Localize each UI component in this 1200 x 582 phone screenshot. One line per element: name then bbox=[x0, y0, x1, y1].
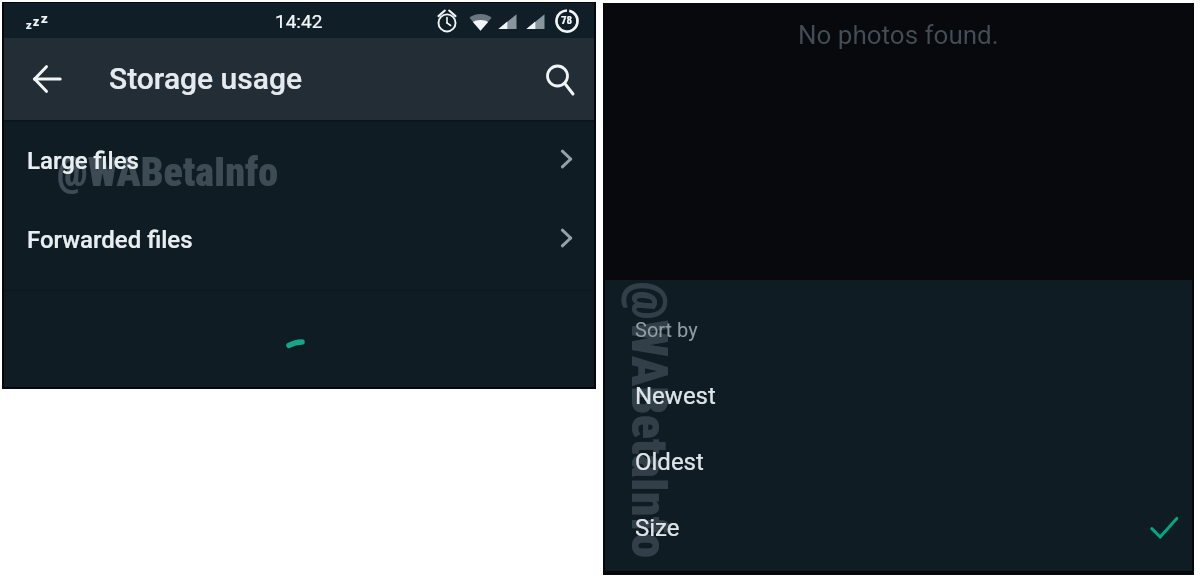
staticText: Storage usage bbox=[109, 61, 302, 96]
button[interactable]: Back bbox=[22, 54, 72, 104]
staticText: Large files bbox=[27, 147, 139, 175]
button[interactable]: Oldest bbox=[605, 429, 1192, 495]
button[interactable]: Size bbox=[605, 495, 1192, 561]
staticText: z bbox=[33, 15, 40, 29]
staticText: 14:42 bbox=[275, 10, 323, 32]
staticText: Oldest bbox=[635, 448, 704, 476]
staticText: @WABetaInfo bbox=[618, 281, 677, 571]
staticText: Sort by bbox=[635, 318, 698, 341]
staticText: Forwarded files bbox=[27, 226, 193, 254]
button[interactable]: Forwarded files bbox=[4, 201, 594, 279]
button[interactable]: Search bbox=[537, 56, 587, 106]
staticText: z bbox=[41, 11, 48, 26]
staticText: Newest bbox=[635, 382, 716, 410]
button[interactable]: Newest bbox=[605, 363, 1192, 429]
staticText: 78 bbox=[561, 14, 573, 27]
staticText: @WABetaInfo bbox=[57, 149, 279, 196]
staticText: No photos found. bbox=[798, 20, 999, 50]
staticText: z bbox=[26, 19, 32, 32]
staticText: Size bbox=[635, 514, 680, 542]
button[interactable]: Large files bbox=[4, 122, 594, 200]
